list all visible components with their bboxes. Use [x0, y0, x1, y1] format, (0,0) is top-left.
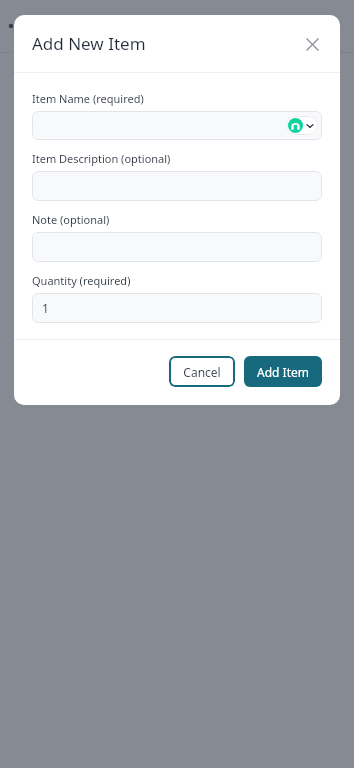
staticText: Cancel	[183, 364, 221, 380]
button[interactable]: Autofill suggestions	[286, 116, 318, 135]
staticText: 1	[42, 300, 49, 316]
button[interactable]	[32, 232, 322, 262]
button[interactable]: Cancel	[169, 356, 235, 387]
staticText: Add Item	[257, 364, 309, 380]
button[interactable]: 1	[32, 293, 322, 323]
staticText: Quantity (required)	[32, 273, 131, 288]
staticText: Note (optional)	[32, 212, 110, 227]
button[interactable]: Back	[7, 22, 15, 30]
button[interactable]: Autofill suggestions	[32, 111, 322, 140]
staticText: Add New Item	[32, 32, 146, 55]
staticText: Item Name (required)	[32, 91, 144, 106]
button[interactable]	[32, 171, 322, 201]
button[interactable]: Add Item	[244, 356, 322, 387]
staticText: Item Description (optional)	[32, 151, 171, 166]
button[interactable]: Close	[298, 30, 326, 58]
